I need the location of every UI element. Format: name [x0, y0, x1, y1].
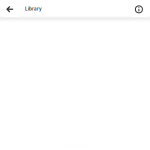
staticText: Library	[25, 6, 42, 12]
button[interactable]: Back	[3, 1, 19, 17]
button[interactable]: Information	[131, 1, 147, 17]
